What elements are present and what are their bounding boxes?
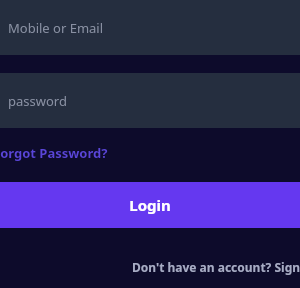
staticText: Login	[129, 195, 171, 215]
button[interactable]: Don't have an account? Sign Up	[132, 257, 300, 277]
button[interactable]: Forgot Password?	[0, 139, 300, 167]
button[interactable]: Mobile or Email	[0, 0, 300, 55]
staticText: Don't have an account? Sign Up	[132, 259, 300, 275]
button[interactable]: Login	[0, 182, 300, 228]
staticText: password	[8, 92, 67, 110]
staticText: Mobile or Email	[8, 19, 104, 37]
staticText: Forgot Password?	[0, 144, 108, 162]
button[interactable]: password	[0, 73, 300, 128]
